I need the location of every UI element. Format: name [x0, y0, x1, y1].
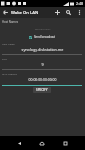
staticText: synology.diskstation.me — [0, 47, 85, 52]
button[interactable]: Send broadcast — [29, 35, 56, 39]
staticText: 00:00:00:00:00:00 — [0, 77, 85, 82]
button[interactable]: Navigate up — [0, 7, 11, 18]
button[interactable]: Home — [36, 137, 48, 149]
staticText: SPECIFY — [36, 88, 48, 92]
staticText: Port — [2, 57, 7, 60]
staticText: Host Name — [2, 42, 15, 45]
staticText: MAC Address — [2, 72, 17, 75]
staticText: Fetched hosts — [0, 27, 85, 30]
button[interactable]: Recent apps — [59, 137, 71, 149]
staticText: Send broadcast — [34, 35, 56, 39]
staticText: Wake On LAN — [11, 10, 39, 16]
button[interactable]: Add host — [52, 7, 63, 18]
button[interactable]: More options — [74, 7, 85, 18]
staticText: 2:48 — [76, 1, 84, 6]
button[interactable]: SPECIFY — [33, 87, 51, 93]
button[interactable]: Search — [63, 7, 74, 18]
staticText: 9 — [0, 62, 85, 67]
button[interactable]: Back — [13, 137, 25, 149]
staticText: Host Names — [2, 20, 19, 24]
